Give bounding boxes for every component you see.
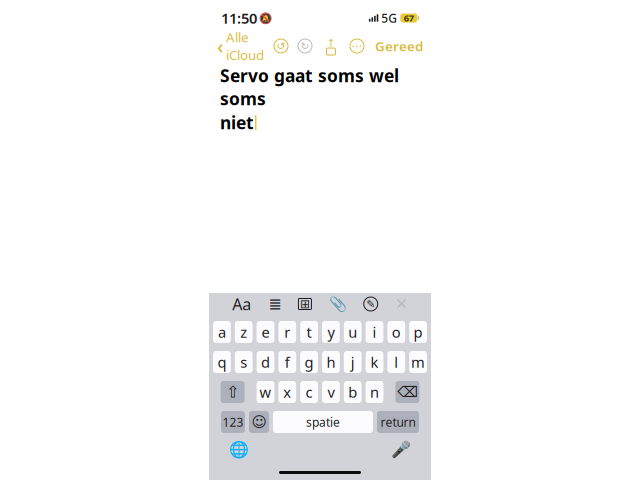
- button[interactable]: 123: [221, 411, 245, 433]
- staticText: y: [327, 322, 334, 342]
- staticText: n: [370, 382, 379, 402]
- staticText: b: [348, 382, 357, 402]
- staticText: v: [327, 382, 334, 402]
- staticText: d: [261, 352, 270, 372]
- staticText: ⌫: [397, 384, 418, 400]
- staticText: ⋯: [351, 40, 362, 52]
- button[interactable]: y: [322, 321, 340, 343]
- button[interactable]: Markup: [364, 297, 378, 311]
- staticText: ☺: [251, 414, 266, 430]
- staticText: 67: [404, 12, 414, 24]
- staticText: Aa: [232, 293, 251, 315]
- button[interactable]: d: [257, 351, 274, 373]
- button[interactable]: Checklist: [268, 295, 281, 313]
- button[interactable]: Close keyboard: [395, 295, 408, 313]
- staticText: h: [326, 352, 335, 372]
- staticText: c: [306, 382, 313, 402]
- button[interactable]: Attach: [329, 296, 347, 312]
- staticText: Gereed: [375, 37, 423, 55]
- button[interactable]: ⇧: [221, 381, 245, 403]
- button[interactable]: ⌫: [395, 381, 419, 403]
- staticText: ≣: [268, 295, 281, 313]
- staticText: 🔕: [259, 12, 272, 24]
- staticText: u: [348, 322, 357, 342]
- staticText: g: [305, 352, 314, 372]
- staticText: 11:50: [221, 8, 257, 28]
- button[interactable]: v: [322, 381, 340, 403]
- button[interactable]: f: [278, 351, 296, 373]
- staticText: spatie: [306, 414, 340, 430]
- staticText: 5G: [381, 10, 397, 26]
- staticText: a: [218, 322, 226, 342]
- staticText: i: [372, 322, 376, 342]
- staticText: Servo gaat soms wel soms: [220, 64, 399, 110]
- button[interactable]: p: [409, 321, 427, 343]
- staticText: ✎: [366, 298, 375, 310]
- button[interactable]: g: [300, 351, 318, 373]
- button[interactable]: n: [366, 381, 383, 403]
- staticText: s: [240, 352, 247, 372]
- staticText: Alle iCloud: [226, 28, 264, 64]
- button[interactable]: c: [300, 381, 318, 403]
- button[interactable]: Format: [232, 293, 251, 315]
- button[interactable]: i: [366, 321, 383, 343]
- button[interactable]: spatie: [273, 411, 373, 433]
- button[interactable]: s: [235, 351, 253, 373]
- button[interactable]: h: [322, 351, 340, 373]
- button[interactable]: a: [213, 321, 231, 343]
- staticText: m: [411, 352, 425, 372]
- button[interactable]: q: [213, 351, 231, 373]
- button[interactable]: z: [235, 321, 253, 343]
- staticText: 🎤: [391, 441, 411, 459]
- button[interactable]: m: [409, 351, 427, 373]
- button[interactable]: u: [344, 321, 362, 343]
- button[interactable]: Change keyboard: [229, 441, 249, 459]
- staticText: 🌐: [229, 441, 249, 459]
- button[interactable]: Redo: [298, 39, 312, 53]
- staticText: w: [259, 382, 271, 402]
- button[interactable]: Undo: [274, 39, 288, 53]
- staticText: e: [261, 322, 269, 342]
- button[interactable]: l: [387, 351, 405, 373]
- button[interactable]: o: [387, 321, 405, 343]
- staticText: ‹: [217, 33, 224, 59]
- button[interactable]: x: [278, 381, 296, 403]
- button[interactable]: t: [300, 321, 318, 343]
- staticText: 123: [222, 414, 243, 430]
- staticText: ⇧: [226, 383, 239, 401]
- staticText: q: [217, 352, 226, 372]
- staticText: niet: [220, 111, 254, 134]
- staticText: t: [307, 322, 312, 342]
- button[interactable]: Table: [298, 298, 311, 309]
- staticText: 📎: [329, 296, 347, 312]
- staticText: k: [370, 352, 378, 372]
- staticText: z: [240, 322, 247, 342]
- button[interactable]: ☺: [249, 411, 269, 433]
- staticText: r: [284, 322, 290, 342]
- staticText: return: [380, 414, 415, 430]
- staticText: l: [394, 352, 398, 372]
- staticText: j: [351, 352, 355, 372]
- button[interactable]: Gereed: [375, 37, 423, 55]
- staticText: x: [283, 382, 291, 402]
- button[interactable]: j: [344, 351, 362, 373]
- staticText: ✕: [395, 295, 408, 313]
- button[interactable]: b: [344, 381, 362, 403]
- staticText: o: [392, 322, 401, 342]
- staticText: ⊞: [300, 297, 310, 311]
- button[interactable]: r: [278, 321, 296, 343]
- button[interactable]: ‹: [217, 28, 264, 64]
- button[interactable]: e: [257, 321, 274, 343]
- staticText: p: [414, 322, 423, 342]
- staticText: ↑: [326, 37, 335, 49]
- staticText: ↻: [300, 40, 309, 52]
- staticText: ↺: [276, 40, 285, 52]
- button[interactable]: Share: [323, 38, 339, 54]
- button[interactable]: k: [366, 351, 383, 373]
- button[interactable]: Dictate: [391, 441, 411, 459]
- button[interactable]: return: [377, 411, 419, 433]
- button[interactable]: More: [350, 39, 364, 53]
- staticText: f: [285, 352, 290, 372]
- button[interactable]: w: [257, 381, 274, 403]
